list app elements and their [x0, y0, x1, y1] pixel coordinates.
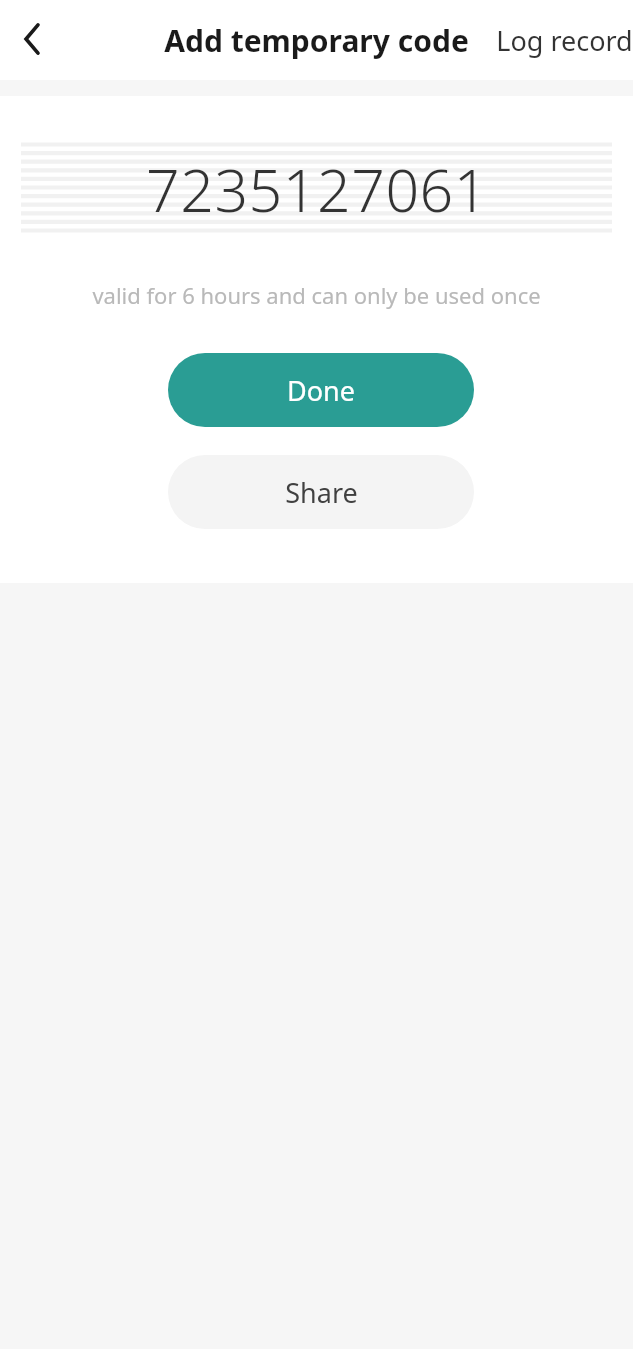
staticText: valid for 6 hours and can only be used o… — [92, 280, 541, 310]
staticText: Done — [287, 372, 355, 409]
button[interactable]: Done — [168, 353, 474, 427]
button[interactable]: Log record — [496, 0, 633, 80]
button[interactable]: Back — [4, 11, 60, 67]
staticText: Log record — [496, 22, 633, 59]
button[interactable]: Share — [168, 455, 474, 529]
staticText: Share — [285, 474, 358, 511]
staticText: Add temporary code — [164, 20, 469, 61]
staticText: 7235127061 — [146, 149, 488, 229]
